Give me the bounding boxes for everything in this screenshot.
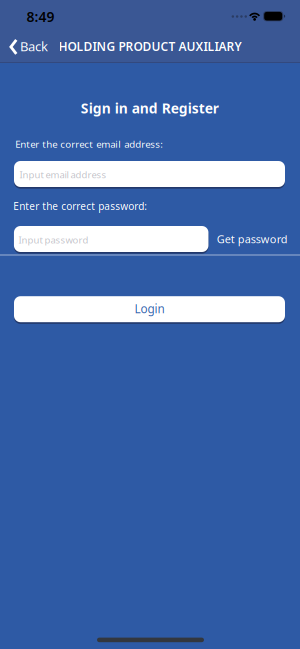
staticText: Enter the correct email address: bbox=[15, 137, 163, 151]
staticText: Back bbox=[20, 37, 48, 55]
staticText: Input email address bbox=[19, 168, 106, 181]
staticText: Enter the correct password: bbox=[13, 199, 147, 213]
staticText: HOLDING PRODUCT AUXILIARY bbox=[58, 38, 241, 54]
staticText: Sign in and Register bbox=[81, 99, 219, 117]
staticText: Login bbox=[134, 301, 164, 317]
staticText: 8:49 bbox=[26, 7, 54, 26]
staticText: Get password bbox=[217, 231, 288, 246]
staticText: Input password bbox=[19, 233, 89, 246]
